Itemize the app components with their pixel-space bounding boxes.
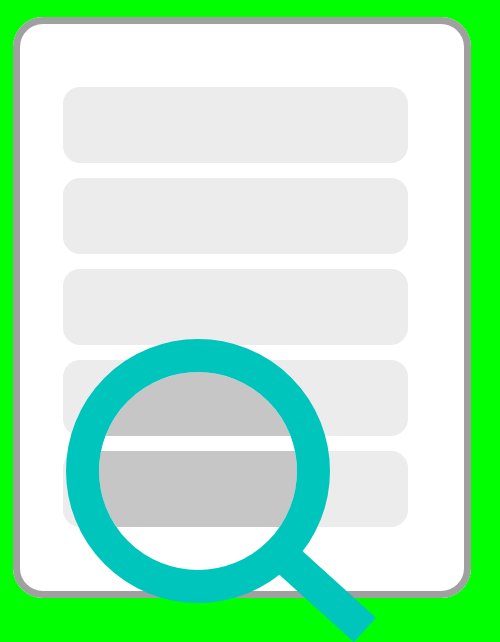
button[interactable]: Search documents <box>0 0 500 642</box>
